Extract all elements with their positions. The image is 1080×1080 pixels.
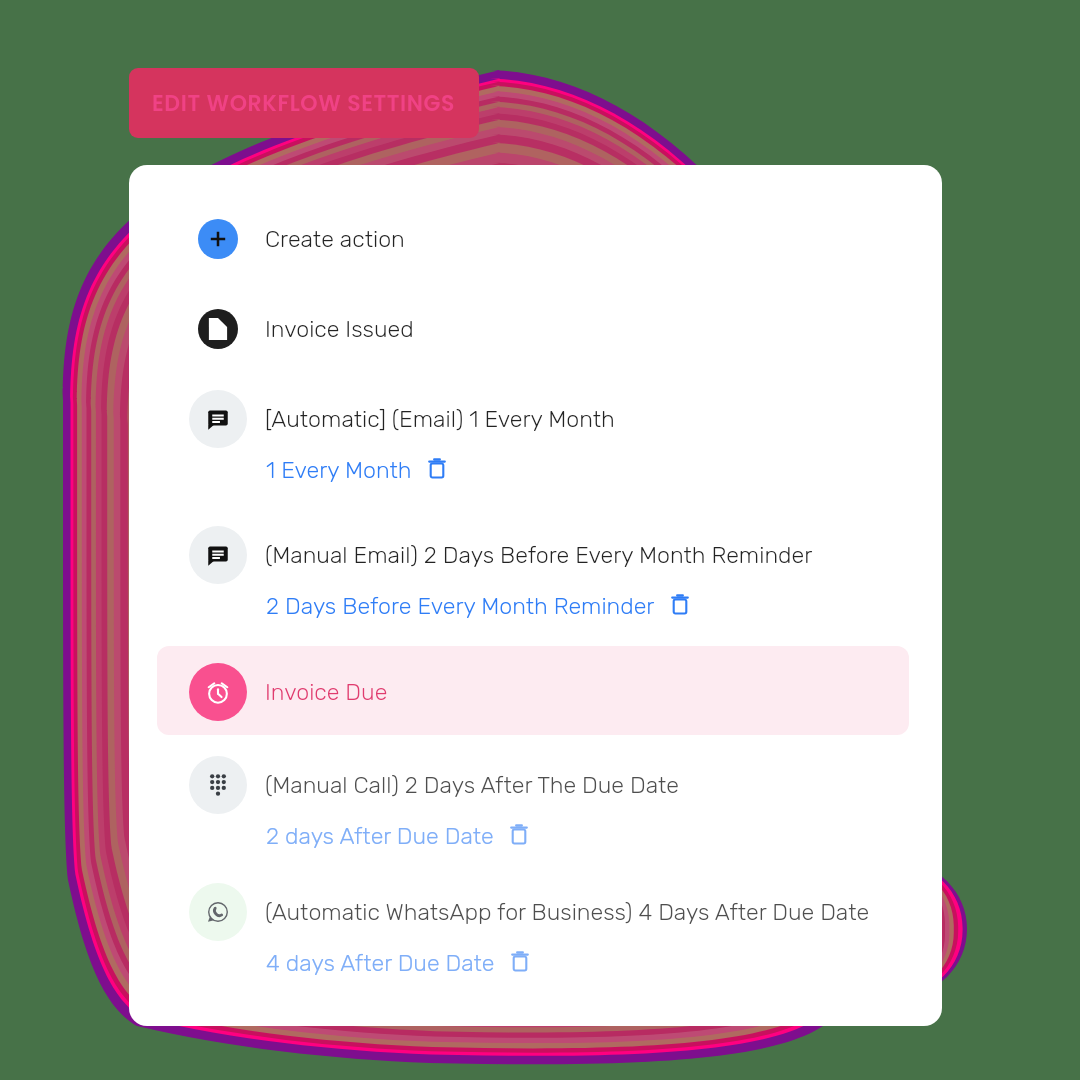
staticText: EDIT WORKFLOW SETTINGS [152, 88, 456, 119]
button[interactable]: (Automatic WhatsApp for Business) 4 Days… [265, 898, 870, 925]
button[interactable]: Delete [509, 948, 531, 976]
button[interactable]: CHAT [189, 526, 247, 584]
button[interactable]: DIALPAD [189, 756, 247, 814]
button[interactable]: 4 days After Due Date [266, 949, 495, 976]
button[interactable]: Create action [265, 225, 405, 252]
button[interactable]: Delete [508, 821, 530, 849]
button[interactable]: (Manual Call) 2 Days After The Due Date [265, 771, 679, 798]
button[interactable]: (Manual Email) 2 Days Before Every Month… [265, 541, 813, 568]
button[interactable] [157, 646, 909, 735]
button[interactable]: CHAT [189, 390, 247, 448]
button[interactable]: Invoice Due [265, 678, 388, 705]
button[interactable]: 2 Days Before Every Month Reminder [266, 592, 655, 619]
button[interactable]: Invoice Issued [265, 315, 414, 342]
button[interactable]: PLUS [198, 219, 238, 259]
button[interactable]: Delete [669, 591, 691, 619]
button[interactable]: EDIT WORKFLOW SETTINGS [129, 68, 479, 138]
button[interactable]: 2 days After Due Date [266, 822, 494, 849]
button[interactable]: 1 Every Month [266, 456, 412, 483]
button[interactable]: Delete [426, 455, 448, 483]
button[interactable]: DOC [198, 309, 238, 349]
button[interactable]: ALARM [189, 663, 247, 721]
button[interactable]: WHATSAPP [189, 883, 247, 941]
button[interactable]: [Automatic] (Email) 1 Every Month [265, 405, 615, 432]
